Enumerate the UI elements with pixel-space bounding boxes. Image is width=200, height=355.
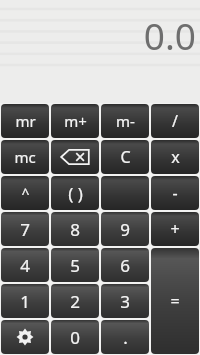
staticText: + — [170, 218, 180, 240]
button[interactable]: - — [151, 176, 199, 210]
staticText: m+ — [64, 111, 87, 131]
button[interactable]: 3 — [101, 284, 149, 318]
staticText: C — [120, 146, 131, 168]
button[interactable]: 2 — [51, 284, 99, 318]
button[interactable]: + — [151, 212, 199, 246]
staticText: ^ — [21, 184, 30, 203]
staticText: mc — [14, 147, 36, 167]
staticText: 9 — [120, 218, 130, 241]
staticText: - — [172, 182, 178, 204]
button[interactable]: m- — [101, 104, 149, 138]
staticText: m- — [116, 111, 135, 131]
button[interactable]: 1 — [1, 284, 49, 318]
button[interactable]: x — [151, 140, 199, 174]
staticText: 8 — [70, 218, 80, 241]
button[interactable]: 9 — [101, 212, 149, 246]
staticText: 2 — [70, 290, 80, 313]
button[interactable]: 4 — [1, 248, 49, 282]
button[interactable]: 6 — [101, 248, 149, 282]
staticText: 4 — [20, 254, 30, 277]
staticText: x — [171, 146, 180, 168]
button[interactable]: mc — [1, 140, 49, 174]
staticText: ( ) — [68, 182, 83, 205]
staticText: . — [123, 326, 128, 349]
button[interactable]: blank — [101, 176, 149, 210]
staticText: 1 — [20, 290, 30, 313]
staticText: / — [172, 110, 178, 132]
button[interactable]: Backspace — [51, 140, 99, 174]
button[interactable]: . — [101, 320, 149, 354]
button[interactable]: 5 — [51, 248, 99, 282]
staticText: 5 — [70, 254, 80, 277]
staticText: 6 — [120, 254, 130, 277]
button[interactable]: mr — [1, 104, 49, 138]
button[interactable]: 7 — [1, 212, 49, 246]
button[interactable]: ( ) — [51, 176, 99, 210]
staticText: 0.0 — [143, 10, 196, 60]
button[interactable]: C — [101, 140, 149, 174]
button[interactable]: / — [151, 104, 199, 138]
button[interactable]: = — [151, 248, 199, 354]
button[interactable]: 8 — [51, 212, 99, 246]
button[interactable]: 0 — [51, 320, 99, 354]
button[interactable]: Settings — [1, 320, 49, 354]
staticText: = — [170, 290, 180, 312]
staticText: 3 — [120, 290, 130, 313]
staticText: mr — [15, 111, 36, 131]
staticText: 7 — [20, 218, 30, 241]
button[interactable]: m+ — [51, 104, 99, 138]
button[interactable]: ^ — [1, 176, 49, 210]
staticText: 0 — [70, 326, 80, 349]
